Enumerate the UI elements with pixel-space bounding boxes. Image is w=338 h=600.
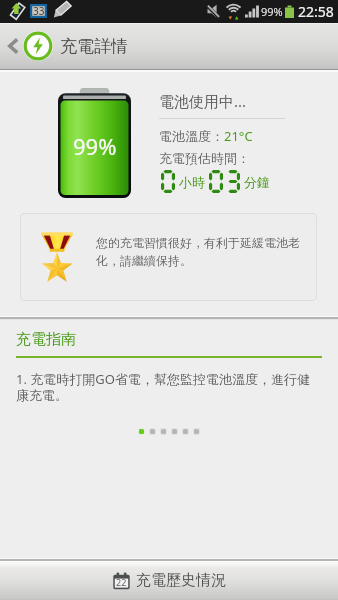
staticText: 電池使用中... [159, 91, 247, 111]
staticText: 充電預估時間： [159, 150, 250, 166]
staticText: 電池溫度： [159, 128, 224, 144]
staticText: 22:58 [298, 2, 334, 21]
button[interactable] [172, 429, 177, 434]
staticText: 您的充電習慣很好，有利于延緩電池老化，請繼續保持。 [96, 235, 317, 269]
button[interactable]: 22 [0, 561, 338, 600]
staticText: 充電歷史情況 [136, 571, 226, 590]
staticText: 99% [73, 131, 117, 161]
button[interactable] [183, 429, 188, 434]
button[interactable] [194, 429, 199, 434]
staticText: 22 [116, 576, 127, 588]
staticText: 充電詳情 [60, 36, 128, 57]
button[interactable] [150, 429, 155, 434]
staticText: 充電指南 [16, 330, 76, 349]
button[interactable] [161, 429, 166, 434]
staticText: 小時 [179, 174, 205, 190]
staticText: 1. 充電時打開GO省電，幫您監控電池溫度，進行健康充電。 [16, 370, 316, 404]
button[interactable]: Back [0, 23, 338, 69]
button[interactable]: 您的充電習慣很好，有利于延緩電池老化，請繼續保持。 [20, 213, 317, 301]
staticText: 33 [33, 4, 45, 18]
staticText: 99% [261, 4, 283, 19]
staticText: 分鐘 [244, 174, 270, 190]
button[interactable] [139, 429, 144, 434]
staticText: 21°C [224, 127, 253, 145]
other: Back [8, 37, 18, 55]
